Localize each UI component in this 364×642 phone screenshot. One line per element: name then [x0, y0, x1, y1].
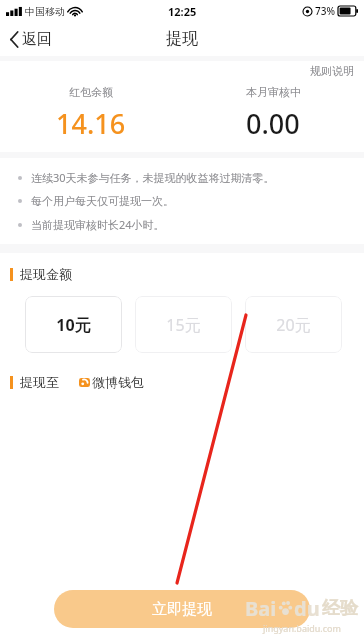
staticText: 每个用户每天仅可提现一次。 — [31, 194, 174, 208]
staticText: 红包余额 — [69, 85, 113, 99]
staticText: 15元 — [166, 314, 201, 336]
staticText: jingyan.baidu.com — [263, 622, 341, 634]
button[interactable]: 微博钱包 — [77, 371, 146, 393]
button[interactable]: 立即提现 — [54, 590, 310, 628]
staticText: 10元 — [56, 314, 91, 336]
staticText: 提现 — [166, 29, 198, 49]
staticText: 连续30天未参与任务，未提现的收益将过期清零。 — [31, 170, 275, 185]
staticText: Bai — [245, 595, 277, 622]
button[interactable]: 规则说明 — [300, 62, 364, 80]
staticText: 中国移动 — [25, 5, 65, 18]
button[interactable]: 返回 — [0, 26, 62, 53]
staticText: 提现至 — [20, 374, 59, 390]
button[interactable]: 10元 — [25, 296, 122, 353]
staticText: 微博钱包 — [92, 374, 144, 390]
button[interactable]: 20元 — [245, 296, 342, 353]
staticText: 20元 — [276, 314, 311, 336]
staticText: 返回 — [22, 30, 52, 49]
staticText: 经验 — [322, 597, 358, 620]
staticText: 12:25 — [168, 4, 197, 19]
staticText: 0.00 — [246, 105, 300, 142]
staticText: 提现金额 — [20, 266, 72, 282]
staticText: 当前提现审核时长24小时。 — [31, 217, 165, 232]
staticText: du — [294, 595, 320, 622]
staticText: 73% — [315, 4, 335, 18]
staticText: 本月审核中 — [246, 85, 301, 99]
staticText: 14.16 — [56, 105, 126, 142]
button[interactable]: 15元 — [135, 296, 232, 353]
staticText: 立即提现 — [152, 600, 212, 619]
